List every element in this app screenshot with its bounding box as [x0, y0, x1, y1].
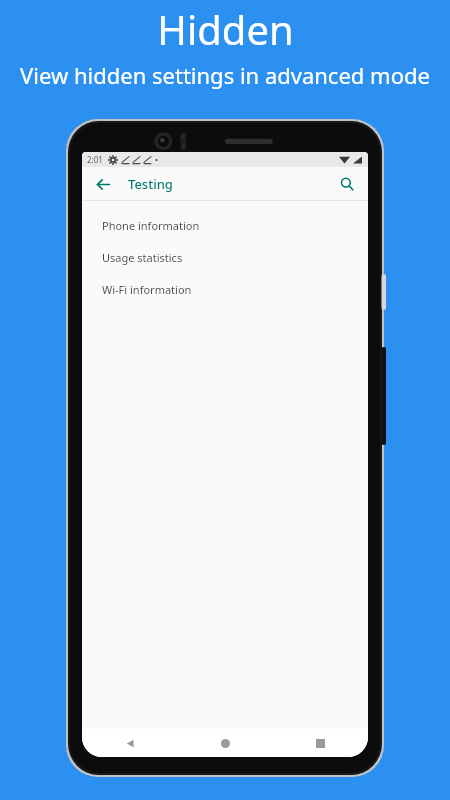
- staticText: Phone information: [102, 218, 200, 233]
- button[interactable]: Home: [178, 729, 273, 757]
- staticText: Wi-Fi information: [102, 282, 192, 297]
- button[interactable]: Phone information: [82, 209, 368, 241]
- button[interactable]: Search: [336, 173, 358, 195]
- staticText: Usage statistics: [102, 250, 183, 265]
- button[interactable]: Usage statistics: [82, 241, 368, 273]
- staticText: View hidden settings in advanced mode: [20, 60, 430, 90]
- staticText: Hidden: [157, 2, 294, 56]
- staticText: 2:01: [87, 154, 103, 165]
- button[interactable]: Back: [92, 173, 114, 195]
- button[interactable]: Back: [82, 729, 178, 757]
- staticText: Testing: [128, 175, 173, 193]
- button[interactable]: Recent apps: [273, 729, 368, 757]
- button[interactable]: Wi-Fi information: [82, 273, 368, 305]
